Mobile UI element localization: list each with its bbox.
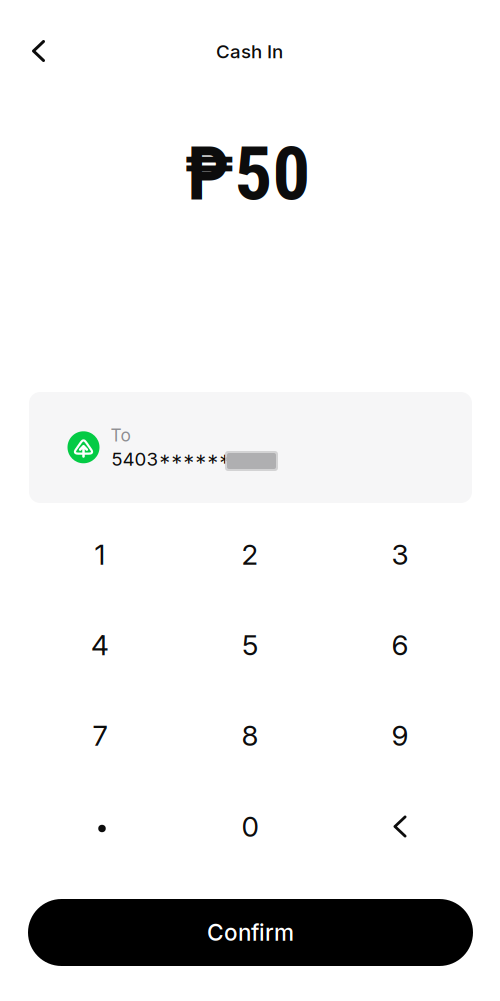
- staticText: 5: [242, 628, 258, 662]
- button[interactable]: Confirm: [28, 899, 473, 966]
- button[interactable]: 6: [326, 600, 474, 690]
- staticText: 0: [241, 810, 258, 843]
- staticText: 5403*********: [111, 448, 266, 470]
- staticText: 6: [391, 628, 408, 662]
- button[interactable]: Back: [15, 28, 61, 74]
- button[interactable]: 8: [176, 690, 324, 780]
- staticText: Cash In: [216, 40, 283, 63]
- button[interactable]: Decimal point: [26, 781, 174, 871]
- staticText: 2: [241, 538, 258, 571]
- staticText: Confirm: [207, 919, 294, 946]
- button[interactable]: 0: [176, 781, 324, 871]
- staticText: 8: [241, 719, 258, 752]
- button[interactable]: 9: [326, 690, 474, 780]
- staticText: To: [110, 425, 130, 446]
- staticText: 1: [94, 538, 105, 571]
- button[interactable]: 7: [26, 690, 174, 780]
- staticText: 9: [391, 719, 408, 752]
- button[interactable]: 2: [176, 509, 324, 599]
- button[interactable]: 1: [26, 509, 174, 599]
- staticText: 7: [92, 719, 107, 752]
- button[interactable]: Delete: [326, 781, 474, 871]
- staticText: ₱50: [184, 130, 310, 218]
- button[interactable]: 4: [26, 600, 174, 690]
- staticText: 4: [91, 628, 109, 662]
- staticText: 3: [391, 538, 408, 571]
- button[interactable]: 3: [326, 509, 474, 599]
- button[interactable]: To: [29, 392, 472, 503]
- button[interactable]: 5: [176, 600, 324, 690]
